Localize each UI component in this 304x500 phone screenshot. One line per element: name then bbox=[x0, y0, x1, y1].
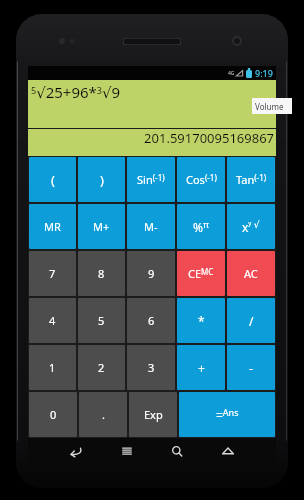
staticText: 6 bbox=[148, 313, 155, 328]
staticText: AC bbox=[244, 266, 258, 281]
button[interactable]: AC bbox=[227, 251, 275, 296]
button[interactable]: ( bbox=[29, 157, 76, 202]
staticText: 5 bbox=[98, 313, 105, 328]
button[interactable]: Home bbox=[211, 439, 245, 463]
staticText: xʸ √ bbox=[242, 218, 260, 235]
staticText: - bbox=[249, 360, 253, 376]
button[interactable]: MR bbox=[29, 204, 76, 249]
staticText: 201.59170095169867 bbox=[144, 129, 274, 147]
staticText: M- bbox=[144, 219, 158, 234]
button[interactable]: =Ans bbox=[179, 392, 275, 437]
button[interactable]: / bbox=[227, 298, 275, 343]
button[interactable]: Back bbox=[59, 439, 93, 463]
staticText: 1 bbox=[49, 360, 56, 375]
staticText: Volume bbox=[255, 101, 284, 112]
button[interactable]: M+ bbox=[78, 204, 125, 249]
button[interactable]: . bbox=[79, 392, 127, 437]
button[interactable]: 4 bbox=[29, 298, 76, 343]
staticText: Cos(-1) bbox=[186, 172, 217, 187]
button[interactable]: 9 bbox=[127, 251, 175, 296]
staticText: 9:19 bbox=[255, 67, 273, 79]
staticText: 5√25+96*3√9 bbox=[31, 82, 121, 102]
staticText: . bbox=[102, 407, 105, 422]
staticText: 8 bbox=[98, 266, 105, 281]
button[interactable]: Sin(-1) bbox=[127, 157, 175, 202]
staticText: 3 bbox=[148, 360, 155, 375]
staticText: %π bbox=[193, 218, 209, 235]
button[interactable]: %π bbox=[177, 204, 225, 249]
button[interactable]: * bbox=[177, 298, 225, 343]
button[interactable]: 5 bbox=[78, 298, 125, 343]
button[interactable]: 8 bbox=[78, 251, 125, 296]
button[interactable]: 6 bbox=[127, 298, 175, 343]
staticText: ) bbox=[100, 171, 104, 189]
staticText: M+ bbox=[93, 219, 110, 234]
button[interactable]: - bbox=[227, 345, 275, 390]
staticText: 4G bbox=[228, 70, 235, 77]
staticText: / bbox=[249, 313, 254, 329]
button[interactable]: ) bbox=[78, 157, 125, 202]
staticText: + bbox=[198, 360, 205, 376]
button[interactable]: 3 bbox=[127, 345, 175, 390]
staticText: 4 bbox=[49, 313, 56, 328]
button[interactable]: Tan(-1) bbox=[227, 157, 275, 202]
staticText: =Ans bbox=[216, 406, 239, 423]
button[interactable]: CEMC bbox=[177, 251, 225, 296]
button[interactable]: + bbox=[177, 345, 225, 390]
staticText: * bbox=[198, 313, 205, 329]
button[interactable]: Exp bbox=[129, 392, 177, 437]
staticText: Tan(-1) bbox=[236, 172, 267, 187]
button[interactable]: Cos(-1) bbox=[177, 157, 225, 202]
staticText: CEMC bbox=[188, 266, 214, 281]
button[interactable]: 7 bbox=[29, 251, 76, 296]
button[interactable]: M- bbox=[127, 204, 175, 249]
staticText: Exp bbox=[144, 407, 163, 422]
staticText: 0 bbox=[50, 407, 57, 422]
button[interactable]: 2 bbox=[78, 345, 125, 390]
staticText: 7 bbox=[49, 266, 56, 281]
button[interactable]: xʸ √ bbox=[227, 204, 275, 249]
staticText: Sin(-1) bbox=[137, 172, 165, 187]
staticText: ( bbox=[51, 171, 55, 189]
staticText: 2 bbox=[98, 360, 105, 375]
staticText: 9 bbox=[148, 266, 155, 281]
button[interactable]: 0 bbox=[29, 392, 77, 437]
button[interactable]: Search bbox=[160, 439, 194, 463]
staticText: MR bbox=[44, 219, 61, 234]
button[interactable]: Menu bbox=[110, 439, 144, 463]
button[interactable]: 1 bbox=[29, 345, 76, 390]
